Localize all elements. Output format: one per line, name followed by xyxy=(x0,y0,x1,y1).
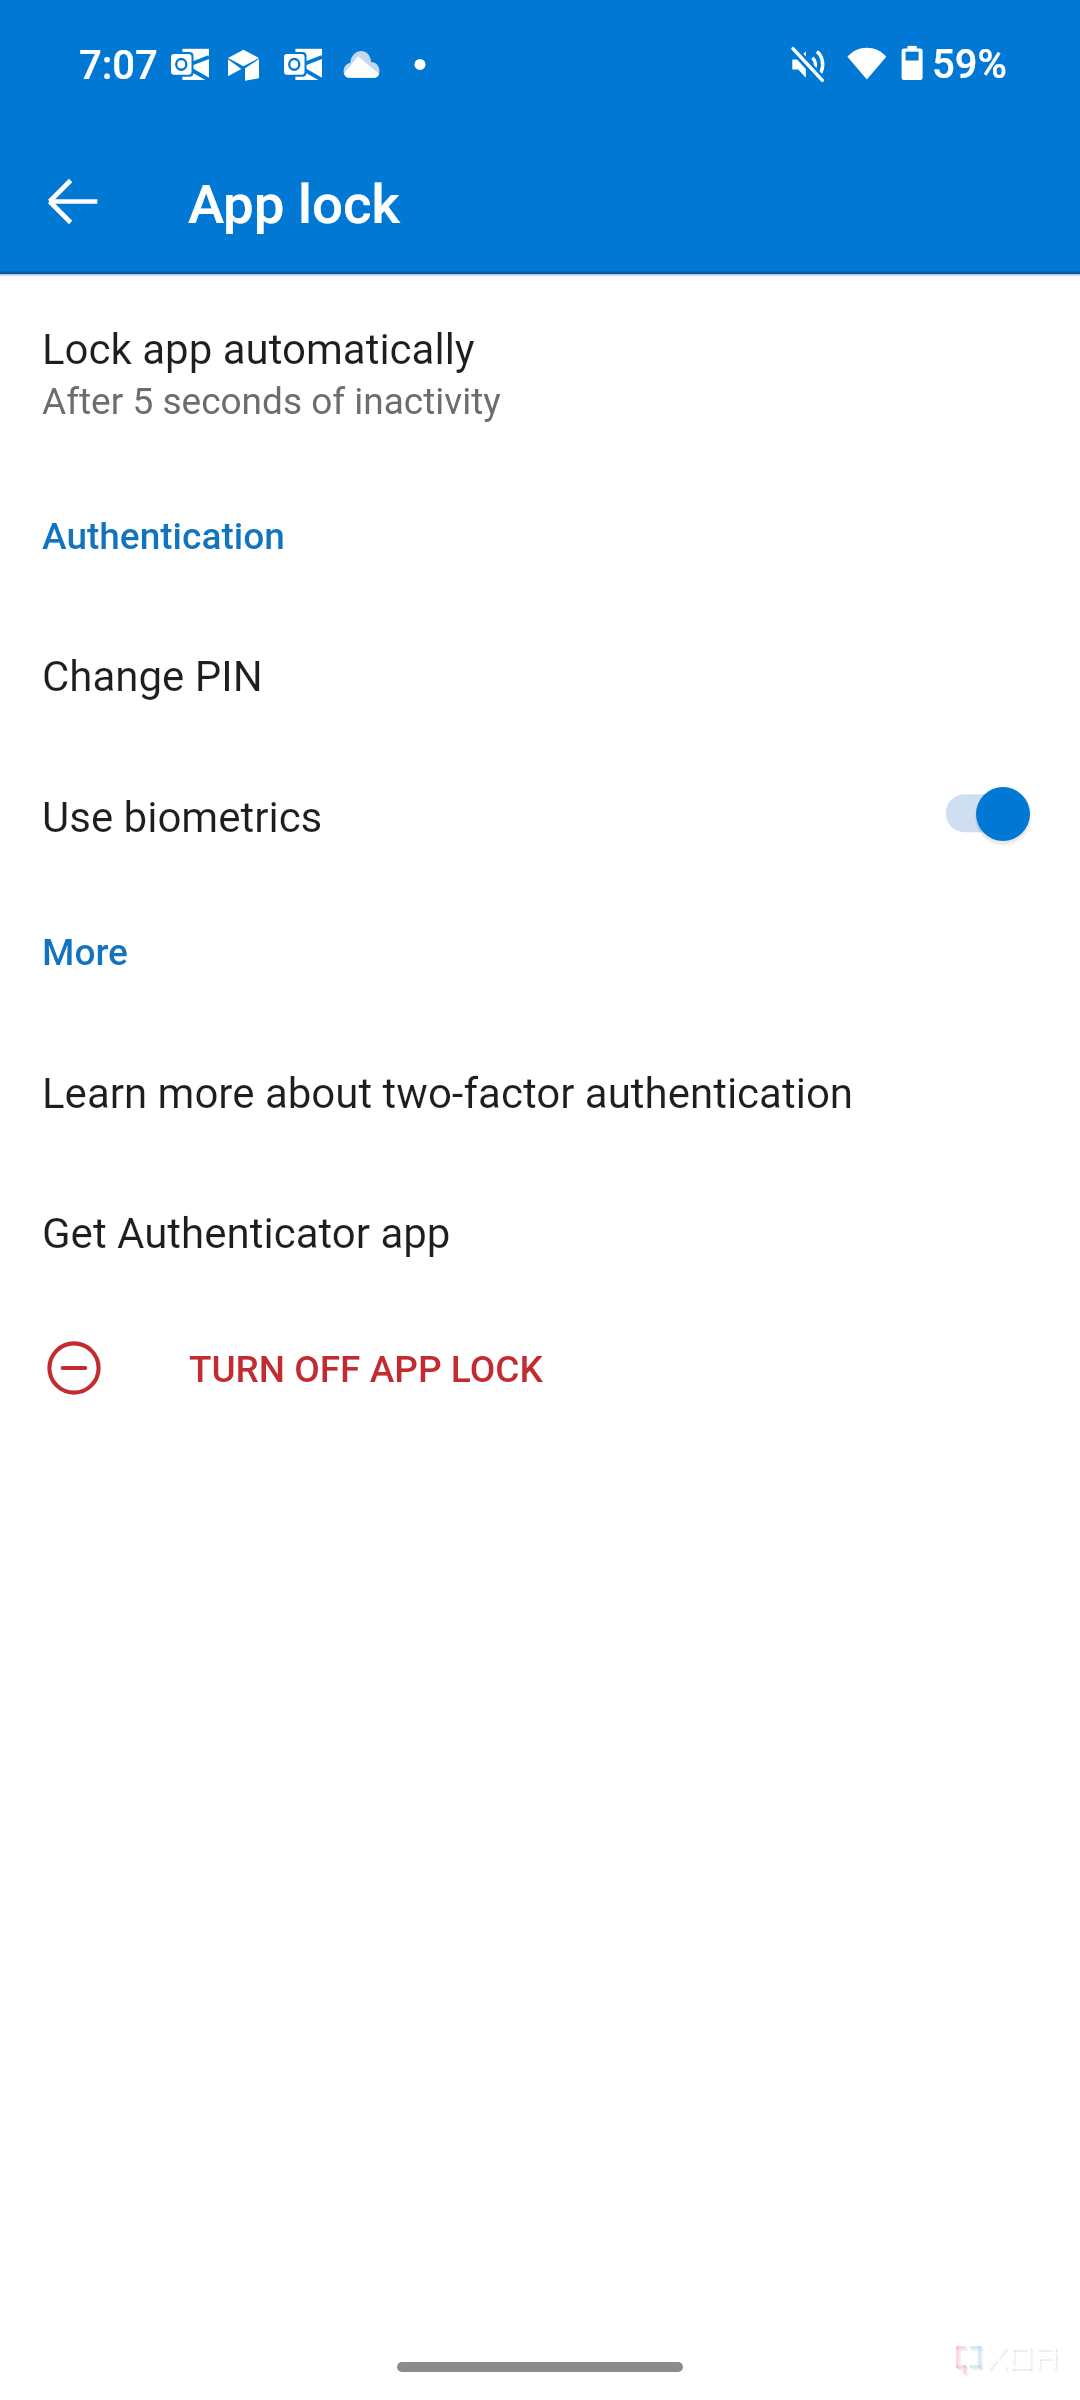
staticText: More xyxy=(42,931,128,974)
staticText: Change PIN xyxy=(42,652,263,701)
staticText: Learn more about two-factor authenticati… xyxy=(42,1069,854,1118)
staticText: 59% xyxy=(932,41,1007,88)
button[interactable]: Change PIN xyxy=(0,618,1080,760)
staticText: After 5 seconds of inactivity xyxy=(42,380,501,423)
button[interactable]: Lock app automatically xyxy=(0,296,1080,448)
button[interactable]: Use biometrics, on xyxy=(930,760,1050,868)
button[interactable]: TURN OFF APP LOCK xyxy=(0,1312,1080,1458)
staticText: App lock xyxy=(188,172,400,236)
button[interactable]: Get Authenticator app xyxy=(0,1176,1080,1316)
staticText: Authentication xyxy=(42,515,285,558)
button[interactable]: Learn more about two-factor authenticati… xyxy=(0,1036,1080,1176)
staticText: Use biometrics xyxy=(42,793,323,842)
staticText: Get Authenticator app xyxy=(42,1209,451,1258)
staticText: TURN OFF APP LOCK xyxy=(189,1348,543,1391)
button[interactable]: Navigate up xyxy=(23,151,123,251)
staticText: Lock app automatically xyxy=(42,325,475,374)
staticText: 7:07 xyxy=(79,42,158,89)
button[interactable]: Use biometrics xyxy=(0,760,1080,902)
